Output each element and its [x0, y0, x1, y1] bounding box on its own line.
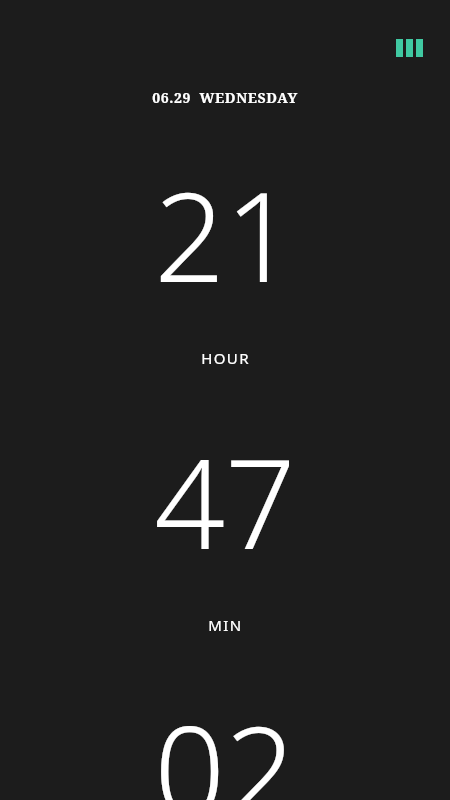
button[interactable]: Battery level [386, 31, 432, 65]
staticText: 02 [154, 683, 296, 800]
staticText: 06.29 WEDNESDAY [152, 88, 298, 107]
button[interactable]: 06.29 WEDNESDAY [0, 88, 450, 107]
staticText: 21 [154, 149, 296, 318]
staticText: MIN [208, 615, 243, 635]
button[interactable]: 47 [0, 416, 450, 635]
button[interactable]: 21 [0, 149, 450, 368]
button[interactable]: 02 [0, 683, 450, 800]
staticText: HOUR [201, 348, 250, 368]
staticText: 47 [154, 416, 296, 585]
